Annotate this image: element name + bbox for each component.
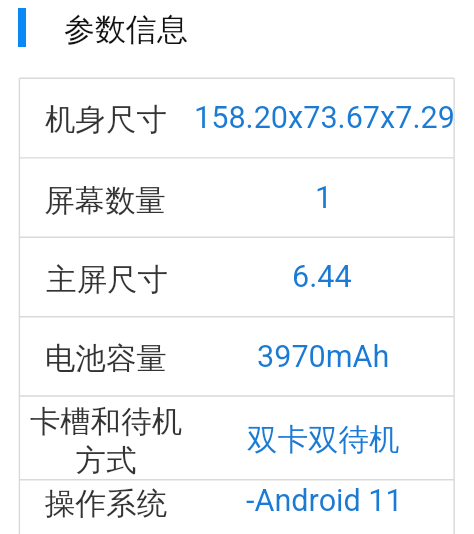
staticText: 1 [315, 180, 333, 216]
staticText: 双卡双待机 [247, 421, 400, 459]
staticText: 屏幕数量 [44, 182, 166, 220]
button[interactable] [19, 78, 454, 158]
button[interactable] [19, 317, 454, 396]
button[interactable] [19, 158, 454, 237]
button[interactable]: 参数信息 [12, 0, 192, 56]
button[interactable] [19, 237, 454, 317]
staticText: -Android 11 [246, 483, 403, 519]
staticText: 机身尺寸 [45, 101, 167, 139]
staticText: 操作系统 [45, 485, 167, 523]
staticText: 6.44 [292, 259, 352, 295]
staticText: 3970mAh [257, 339, 390, 375]
staticText: 电池容量 [45, 340, 167, 378]
staticText: 158.20x73.67x7.29 [194, 100, 455, 136]
button[interactable] [19, 480, 454, 520]
staticText: 主屏尺寸 [46, 261, 168, 299]
staticText: 卡槽和待机方式 [20, 403, 192, 480]
button[interactable] [19, 396, 454, 480]
staticText: 参数信息 [64, 10, 188, 49]
